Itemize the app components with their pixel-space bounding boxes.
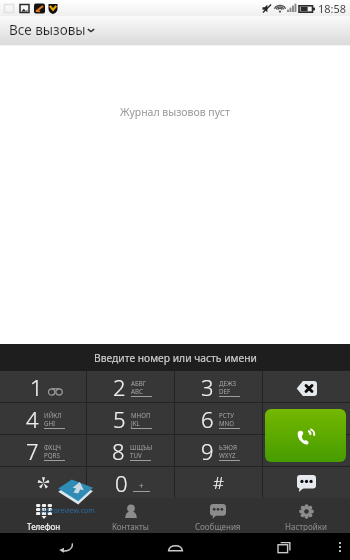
staticText: 5 bbox=[113, 404, 126, 434]
staticText: videoreview.com bbox=[40, 506, 95, 516]
button[interactable]: 8 bbox=[87, 435, 174, 466]
staticText: 2 bbox=[113, 372, 126, 402]
button[interactable]: # bbox=[175, 467, 262, 498]
staticText: АБВГ bbox=[131, 379, 146, 387]
staticText: # bbox=[213, 471, 224, 494]
staticText: ИЙКЛ bbox=[44, 411, 62, 419]
staticText: Контакты bbox=[112, 521, 149, 531]
button[interactable]: Call bbox=[265, 409, 346, 462]
staticText: Телефон bbox=[27, 521, 61, 531]
staticText: ABC bbox=[131, 387, 143, 395]
staticText: Сообщения bbox=[195, 521, 241, 531]
staticText: 4 bbox=[26, 404, 39, 434]
button[interactable]: Настройки bbox=[262, 498, 350, 533]
button[interactable]: Контакты bbox=[87, 498, 174, 533]
staticText: 18:58 bbox=[318, 1, 347, 16]
staticText: 7 bbox=[26, 436, 39, 466]
staticText: + bbox=[139, 480, 144, 491]
staticText: WXYZ bbox=[219, 451, 236, 459]
button[interactable]: Сообщения bbox=[174, 498, 262, 533]
staticText: ЬЭЮЯ bbox=[219, 443, 237, 451]
staticText: 3 bbox=[201, 372, 214, 402]
button[interactable]: Все вызовы bbox=[0, 16, 105, 44]
button[interactable]: Backspace bbox=[262, 371, 350, 402]
button[interactable]: Back bbox=[55, 536, 77, 558]
staticText: 6 bbox=[201, 404, 214, 434]
staticText: MNO bbox=[219, 419, 235, 427]
staticText: РСТУ bbox=[219, 411, 234, 419]
button[interactable]: Home bbox=[164, 536, 186, 558]
button[interactable]: 5 bbox=[87, 403, 174, 434]
button[interactable]: 1 bbox=[0, 371, 86, 402]
staticText: DEF bbox=[219, 387, 231, 395]
staticText: 0 bbox=[115, 468, 128, 498]
staticText: JKL bbox=[131, 419, 140, 427]
staticText: TUV bbox=[130, 451, 142, 459]
staticText: Журнал вызовов пуст bbox=[120, 105, 230, 119]
staticText: 8 bbox=[112, 436, 125, 466]
staticText: ФХЦЧ bbox=[44, 443, 62, 451]
button[interactable]: Messages bbox=[262, 467, 350, 498]
staticText: МНОП bbox=[131, 411, 151, 419]
staticText: GHI bbox=[44, 419, 56, 427]
staticText: 1 bbox=[30, 372, 43, 402]
staticText: Введите номер или часть имени bbox=[94, 351, 257, 365]
button[interactable]: 9 bbox=[175, 435, 262, 466]
button[interactable]: 2 bbox=[87, 371, 174, 402]
button[interactable]: 6 bbox=[175, 403, 262, 434]
button[interactable]: 7 bbox=[0, 435, 86, 466]
staticText: ДЕЖЗ bbox=[219, 379, 237, 387]
staticText: Все вызовы bbox=[9, 21, 86, 39]
button[interactable]: 3 bbox=[175, 371, 262, 402]
staticText: 9 bbox=[201, 436, 214, 466]
button[interactable]: 0 bbox=[87, 467, 174, 498]
button[interactable]: Recents bbox=[273, 536, 295, 558]
button[interactable]: Телефон bbox=[0, 498, 87, 533]
button[interactable]: More options bbox=[339, 542, 341, 552]
staticText: PQRS bbox=[44, 451, 60, 459]
button[interactable]: 4 bbox=[0, 403, 86, 434]
staticText: Настройки bbox=[285, 521, 327, 531]
button[interactable]: Star bbox=[0, 467, 86, 498]
staticText: ШЩЪЫ bbox=[130, 443, 153, 451]
